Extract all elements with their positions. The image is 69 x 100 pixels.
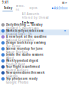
staticText: National Geographic [6,39,34,42]
staticText: United Airlines [6,69,28,72]
staticText: Ask Inbox [54,6,67,10]
staticText: All Accounts [22,12,39,16]
button[interactable]: Design tools keep evolving [0,41,69,47]
button[interactable]: Today [1,5,14,11]
button[interactable]: Science roundup for June [0,47,69,53]
button[interactable]: Trip photos are ready [0,77,69,83]
staticText: The Verge [6,45,21,48]
staticText: Design tools keep evolving [6,41,46,44]
button[interactable]: Weekly product digest [0,59,69,65]
staticText: Today [4,6,12,10]
staticText: Weekly product digest [6,59,38,62]
button[interactable]: New connections this week [0,71,69,77]
staticText: New connections this week [6,71,45,74]
staticText: Financial Times · 3h [6,33,32,36]
staticText: Sections [16,4,25,11]
staticText: Inbox [22,20,34,25]
staticText: A new look at the coastline [6,35,47,38]
button[interactable]: Ask Inbox [52,6,69,10]
staticText: Trip photos are ready [6,77,37,80]
staticText: Wired [6,57,14,60]
staticText: Google Photos [6,81,28,84]
staticText: Nature Briefing [6,51,28,54]
button[interactable]: Topics [27,5,39,11]
button[interactable]: Inside the studio sessions [0,53,69,59]
button[interactable]: Sections [14,4,27,12]
button[interactable]: A new look at the coastline [0,35,69,41]
staticText: Updated 5 minutes ago [6,27,39,30]
button[interactable]: Your flight is confirmed [0,65,69,71]
staticText: ▮▮ ▰ [62,1,67,4]
staticText: Topics [29,6,37,10]
staticText: Science roundup for June [6,47,43,50]
staticText: Daily Briefing — Tuesday [6,23,42,26]
staticText: Product Hunt [6,63,25,66]
staticText: Markets rally as rates ease [6,29,44,32]
staticText: 9:41 [2,1,9,4]
button[interactable]: Markets rally as rates ease [0,29,69,35]
staticText: Inside the studio sessions [6,53,43,56]
staticText: Your flight is confirmed [6,65,40,68]
staticText: LinkedIn [6,75,18,78]
staticText: Filtered by: Unread [22,16,49,19]
button[interactable]: Daily Briefing — Tuesday [0,23,69,29]
